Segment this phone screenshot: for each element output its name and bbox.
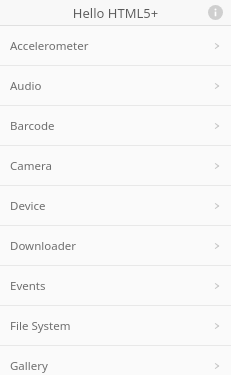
staticText: Camera	[10, 158, 52, 174]
button[interactable]: Downloader	[0, 226, 231, 265]
button[interactable]: Audio	[0, 66, 231, 105]
button[interactable]: Accelerometer	[0, 26, 231, 65]
staticText: File System	[10, 318, 71, 334]
staticText: Downloader	[10, 238, 76, 254]
staticText: Accelerometer	[10, 38, 89, 54]
button[interactable]: File System	[0, 306, 231, 345]
staticText: Device	[10, 198, 46, 214]
button[interactable]: Events	[0, 266, 231, 305]
button[interactable]: Gallery	[0, 346, 231, 375]
button[interactable]: About	[202, 0, 228, 25]
staticText: Barcode	[10, 118, 55, 134]
button[interactable]: Barcode	[0, 106, 231, 145]
staticText: Hello HTML5+	[0, 4, 231, 22]
button[interactable]: Camera	[0, 146, 231, 185]
staticText: Audio	[10, 78, 42, 94]
staticText: Events	[10, 278, 46, 294]
button[interactable]: Device	[0, 186, 231, 225]
staticText: Gallery	[10, 358, 48, 374]
